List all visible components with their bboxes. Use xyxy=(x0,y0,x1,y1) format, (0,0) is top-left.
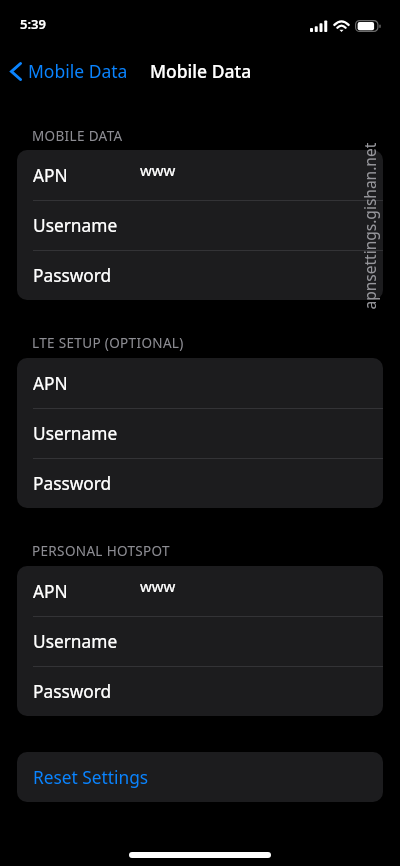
button[interactable]: APN xyxy=(17,358,383,408)
staticText: MOBILE DATA xyxy=(32,127,123,145)
button[interactable]: Password xyxy=(17,666,383,716)
button[interactable]: Reset Settings xyxy=(17,752,383,802)
staticText: Username xyxy=(33,630,118,654)
staticText: Username xyxy=(33,422,118,446)
staticText: apnsettings.gishan.net xyxy=(358,142,379,309)
staticText: Mobile Data xyxy=(150,59,252,83)
button[interactable]: APN xyxy=(17,566,383,616)
staticText: Username xyxy=(33,214,118,238)
button[interactable]: Back xyxy=(4,55,136,87)
staticText: 5:39 xyxy=(20,15,46,33)
other: Wi-Fi xyxy=(333,20,350,32)
staticText: Reset Settings xyxy=(33,766,149,790)
button[interactable]: Password xyxy=(17,458,383,508)
staticText: Password xyxy=(33,264,112,288)
staticText: APN xyxy=(33,372,68,396)
button[interactable]: Password xyxy=(17,250,383,300)
staticText: APN xyxy=(33,580,68,604)
staticText: PERSONAL HOTSPOT xyxy=(32,542,170,560)
button[interactable]: Username xyxy=(17,200,383,250)
other: Back xyxy=(10,62,22,81)
staticText: Password xyxy=(33,680,112,704)
other: Battery xyxy=(355,20,381,32)
button[interactable]: APN xyxy=(17,150,383,200)
staticText: Password xyxy=(33,472,112,496)
staticText: LTE SETUP (OPTIONAL) xyxy=(32,334,184,352)
button[interactable]: Username xyxy=(17,408,383,458)
other: Cellular signal xyxy=(310,20,327,32)
staticText: Mobile Data xyxy=(28,59,128,83)
staticText: www xyxy=(140,576,176,596)
staticText: www xyxy=(140,160,176,180)
staticText: APN xyxy=(33,164,68,188)
button[interactable]: Username xyxy=(17,616,383,666)
